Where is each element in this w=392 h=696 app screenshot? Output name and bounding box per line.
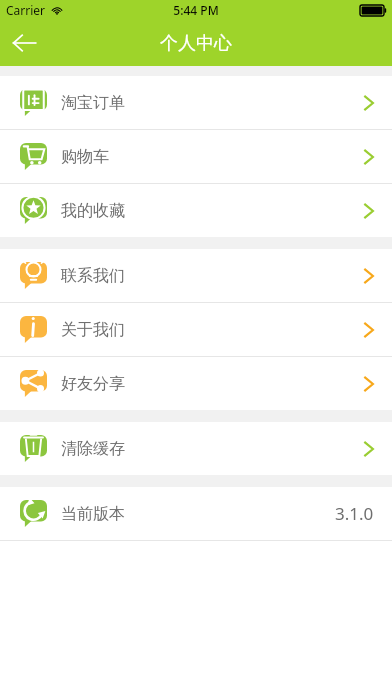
staticText: 关于我们 [61, 320, 125, 340]
staticText: 联系我们 [61, 266, 125, 286]
button[interactable]: Back [0, 20, 48, 66]
staticText: 当前版本 [61, 504, 125, 524]
staticText: Carrier [6, 2, 46, 18]
button[interactable]: 关于我们 [0, 303, 392, 356]
button[interactable]: 当前版本 [0, 487, 392, 540]
staticText: 个人中心 [160, 32, 232, 55]
button[interactable]: 清除缓存 [0, 422, 392, 475]
staticText: 好友分享 [61, 374, 125, 394]
staticText: 3.1.0 [335, 502, 374, 525]
button[interactable]: 我的收藏 [0, 184, 392, 237]
button[interactable]: 购物车 [0, 130, 392, 183]
staticText: 淘宝订单 [61, 93, 125, 113]
staticText: 购物车 [61, 147, 109, 167]
staticText: 我的收藏 [61, 201, 125, 221]
button[interactable]: 好友分享 [0, 357, 392, 410]
button[interactable]: 淘宝订单 [0, 76, 392, 129]
button[interactable]: 联系我们 [0, 249, 392, 302]
staticText: 5:44 PM [173, 2, 219, 18]
staticText: 清除缓存 [61, 439, 125, 459]
